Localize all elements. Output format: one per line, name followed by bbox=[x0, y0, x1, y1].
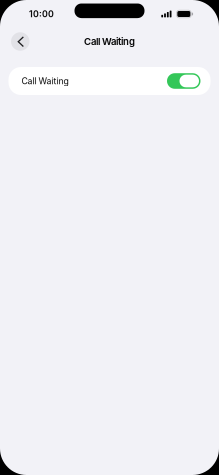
staticText: 10:00 bbox=[29, 9, 54, 19]
staticText: Call Waiting bbox=[21, 76, 68, 86]
button[interactable]: Back bbox=[11, 32, 29, 51]
staticText: Call Waiting bbox=[84, 36, 135, 47]
button[interactable]: Call Waiting bbox=[8, 67, 210, 95]
